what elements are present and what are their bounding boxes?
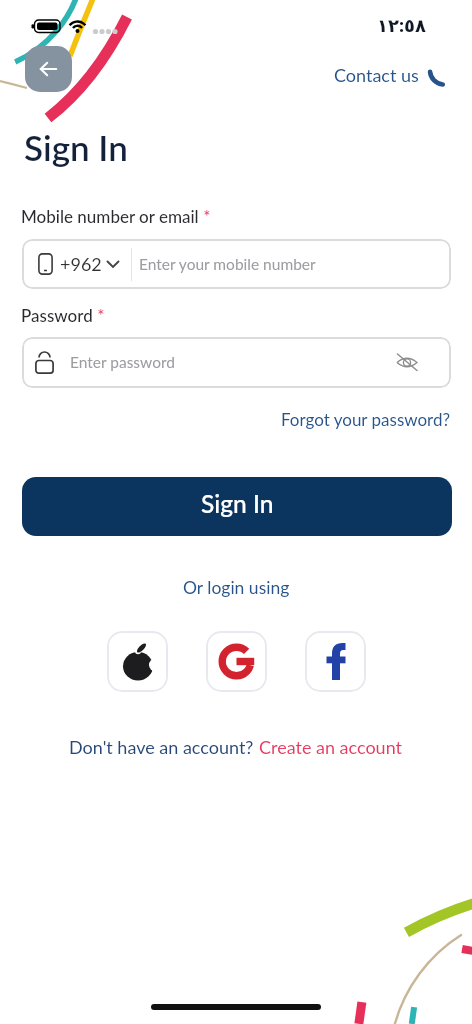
button[interactable] <box>206 631 267 692</box>
staticText: Enter your mobile number <box>139 255 316 274</box>
button[interactable]: Create an account <box>259 736 403 758</box>
button[interactable] <box>25 46 72 92</box>
button[interactable]: Forgot your password? <box>281 409 451 429</box>
staticText: Enter password <box>70 353 175 372</box>
staticText: Mobile number or email <box>21 206 199 226</box>
staticText: ١٢:٥٨ <box>377 13 427 38</box>
staticText: * <box>93 305 105 325</box>
button[interactable]: Contact us <box>334 64 447 86</box>
staticText: Don't have an account? <box>69 736 259 758</box>
button[interactable]: +962 <box>22 239 451 289</box>
staticText: Sign In <box>24 126 128 168</box>
button[interactable]: Enter password <box>22 337 451 388</box>
button[interactable] <box>305 631 366 692</box>
staticText: Password <box>21 305 93 325</box>
staticText: Sign In <box>201 489 274 518</box>
button[interactable]: Sign In <box>22 477 452 536</box>
staticText: +962 <box>60 253 102 275</box>
button[interactable] <box>107 631 168 692</box>
staticText: * <box>199 206 211 226</box>
staticText: Or login using <box>183 577 290 598</box>
staticText: Contact us <box>334 64 419 86</box>
